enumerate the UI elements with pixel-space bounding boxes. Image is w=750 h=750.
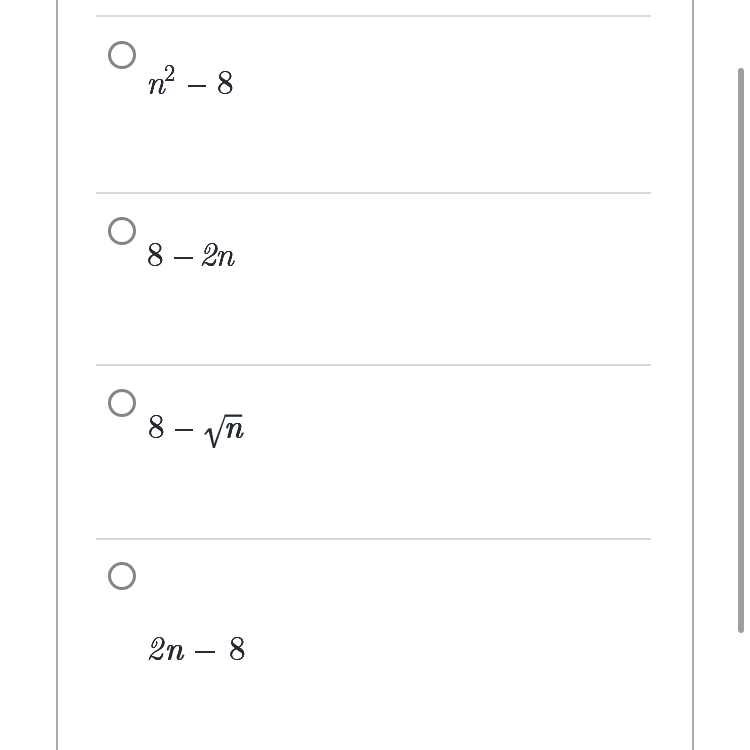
staticText: 2 <box>164 55 176 87</box>
staticText: 8 <box>229 622 246 670</box>
staticText: 8 <box>147 228 164 276</box>
staticText: n <box>215 228 234 276</box>
staticText: n <box>146 56 165 104</box>
staticText: 8 <box>148 400 165 448</box>
staticText: n <box>164 622 183 670</box>
button[interactable]: Select option 2 <box>108 217 136 245</box>
staticText: n <box>223 400 242 448</box>
staticText: 2 <box>199 228 216 276</box>
staticText: n <box>215 228 234 276</box>
staticText: 8 <box>229 622 246 670</box>
staticText: 2 <box>146 622 163 670</box>
staticText: n <box>224 400 243 448</box>
staticText: n <box>164 622 183 670</box>
staticText: 8 <box>229 622 246 670</box>
staticText: 8 <box>147 228 164 276</box>
button[interactable]: Answer option 4: 2n minus 8 <box>58 540 692 750</box>
staticText: n <box>224 400 243 448</box>
staticText: 8 <box>148 400 165 448</box>
staticText: 2 <box>146 622 163 670</box>
staticText: 8 <box>229 622 246 670</box>
staticText: 2 <box>146 622 163 670</box>
staticText: 8 <box>148 400 165 448</box>
button[interactable]: Answer option 2: 8 minus 2n <box>58 194 692 364</box>
staticText: n <box>165 622 184 670</box>
staticText: n <box>224 400 243 448</box>
staticText: n <box>164 622 183 670</box>
staticText: 8 <box>217 56 234 104</box>
staticText: 2 <box>146 622 163 670</box>
staticText: 8 <box>148 400 165 448</box>
staticText: n <box>146 56 165 104</box>
staticText: n <box>215 228 234 276</box>
button[interactable]: Answer option 3: 8 minus square root of … <box>58 366 692 538</box>
staticText: 8 <box>217 56 234 104</box>
staticText: 2 <box>146 622 163 670</box>
staticText: 8 <box>217 56 234 104</box>
staticText: 8 <box>147 228 164 276</box>
staticText: n <box>146 56 165 104</box>
staticText: 2 <box>164 55 176 87</box>
staticText: 2 <box>199 228 216 276</box>
staticText: 8 <box>148 400 165 448</box>
staticText: n <box>146 56 165 104</box>
staticText: 2 <box>199 228 216 276</box>
staticText: 8 <box>217 56 234 104</box>
staticText: 8 <box>147 228 164 276</box>
staticText: n <box>215 228 234 276</box>
staticText: 8 <box>217 56 234 104</box>
staticText: 8 <box>147 228 164 276</box>
button[interactable]: Select option 1 <box>108 41 136 69</box>
staticText: 2 <box>199 228 216 276</box>
button[interactable]: Select option 4 <box>108 562 136 590</box>
button[interactable]: Select option 3 <box>108 389 136 417</box>
staticText: n <box>224 400 243 448</box>
staticText: n <box>215 228 234 276</box>
staticText: 2 <box>164 55 176 87</box>
staticText: 2 <box>164 55 176 87</box>
staticText: 2 <box>164 55 176 87</box>
button[interactable]: Answer option 1: n squared minus 8 <box>58 17 692 192</box>
staticText: 8 <box>229 622 246 670</box>
staticText: n <box>146 56 165 104</box>
staticText: 2 <box>199 228 216 276</box>
staticText: n <box>164 622 183 670</box>
